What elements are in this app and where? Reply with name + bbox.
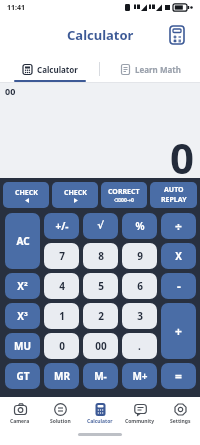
button[interactable]: M+	[122, 363, 157, 389]
staticText: MR	[54, 369, 70, 383]
button[interactable]	[168, 26, 186, 44]
staticText: X²	[17, 279, 28, 293]
button[interactable]: 1	[44, 303, 79, 329]
staticText: 00	[5, 85, 16, 97]
staticText: CHECK	[15, 188, 38, 198]
staticText: +	[175, 323, 182, 339]
button[interactable]: AUTO	[150, 182, 197, 208]
button[interactable]: M-	[83, 363, 118, 389]
button[interactable]: X	[161, 243, 196, 269]
staticText: %	[135, 219, 145, 233]
staticText: 2	[98, 309, 104, 323]
button[interactable]: %	[122, 213, 157, 239]
button[interactable]: MU	[5, 333, 40, 359]
button[interactable]: +/-	[44, 213, 79, 239]
staticText: AC	[16, 234, 30, 248]
staticText: Camera	[10, 418, 30, 425]
staticText: 3	[137, 309, 143, 323]
staticText: +/-	[55, 219, 69, 233]
staticText: M+	[132, 369, 148, 383]
staticText: 0	[170, 129, 195, 186]
staticText: 9	[137, 249, 143, 263]
button[interactable]: .	[122, 333, 157, 359]
staticText: 11:41	[7, 3, 25, 13]
staticText: =	[175, 368, 182, 384]
button[interactable]: CORRECT	[101, 182, 147, 208]
button[interactable]: 3	[122, 303, 157, 329]
staticText: REPLAY	[161, 195, 187, 205]
staticText: ⌫00→0	[114, 197, 134, 204]
button[interactable]: √	[83, 213, 118, 239]
button[interactable]: +	[161, 303, 196, 359]
staticText: CORRECT	[108, 187, 140, 197]
button[interactable]: Learn Math	[100, 55, 200, 83]
staticText: Calculator	[87, 418, 113, 425]
button[interactable]: Calculator	[0, 55, 99, 83]
button[interactable]: Solution	[40, 397, 80, 431]
staticText: X	[175, 249, 182, 263]
button[interactable]: X²	[5, 273, 40, 299]
button[interactable]: CHECK	[52, 182, 98, 208]
button[interactable]: 7	[44, 243, 79, 269]
button[interactable]: Camera	[0, 397, 40, 431]
staticText: MU	[14, 339, 31, 353]
staticText: Learn Math	[135, 64, 181, 75]
button[interactable]: 5	[83, 273, 118, 299]
button[interactable]: GT	[5, 363, 40, 389]
staticText: X³	[17, 309, 28, 323]
staticText: ÷	[175, 218, 182, 234]
button[interactable]: 2	[83, 303, 118, 329]
staticText: 7	[59, 249, 65, 263]
staticText: .	[138, 339, 141, 353]
staticText: Community	[125, 418, 155, 425]
button[interactable]: AC	[5, 213, 40, 269]
staticText: √	[97, 220, 104, 232]
staticText: 5	[98, 279, 104, 293]
staticText: GT	[16, 369, 30, 383]
staticText: 1	[59, 309, 65, 323]
button[interactable]: X³	[5, 303, 40, 329]
button[interactable]: 8	[83, 243, 118, 269]
button[interactable]: 4	[44, 273, 79, 299]
button[interactable]: =	[161, 363, 196, 389]
staticText: 4	[59, 279, 65, 293]
staticText: CHECK	[64, 188, 87, 198]
button[interactable]: 00	[83, 333, 118, 359]
staticText: 0	[59, 339, 65, 353]
staticText: -	[177, 278, 181, 294]
button[interactable]: 0	[44, 333, 79, 359]
staticText: M-	[94, 369, 107, 383]
staticText: AUTO	[164, 185, 184, 195]
button[interactable]: -	[161, 273, 196, 299]
staticText: 00	[95, 339, 107, 353]
button[interactable]: CHECK	[3, 182, 49, 208]
staticText: 8	[98, 249, 104, 263]
button[interactable]: Community	[120, 397, 160, 431]
staticText: Solution	[50, 418, 71, 425]
button[interactable]: 6	[122, 273, 157, 299]
button[interactable]: 9	[122, 243, 157, 269]
staticText: Settings	[170, 418, 191, 425]
button[interactable]: Calculator	[80, 397, 120, 431]
staticText: Calculator	[67, 26, 134, 44]
button[interactable]: MR	[44, 363, 79, 389]
staticText: Calculator	[37, 64, 78, 75]
staticText: 6	[137, 279, 143, 293]
button[interactable]: Settings	[160, 397, 200, 431]
button[interactable]: ÷	[161, 213, 196, 239]
